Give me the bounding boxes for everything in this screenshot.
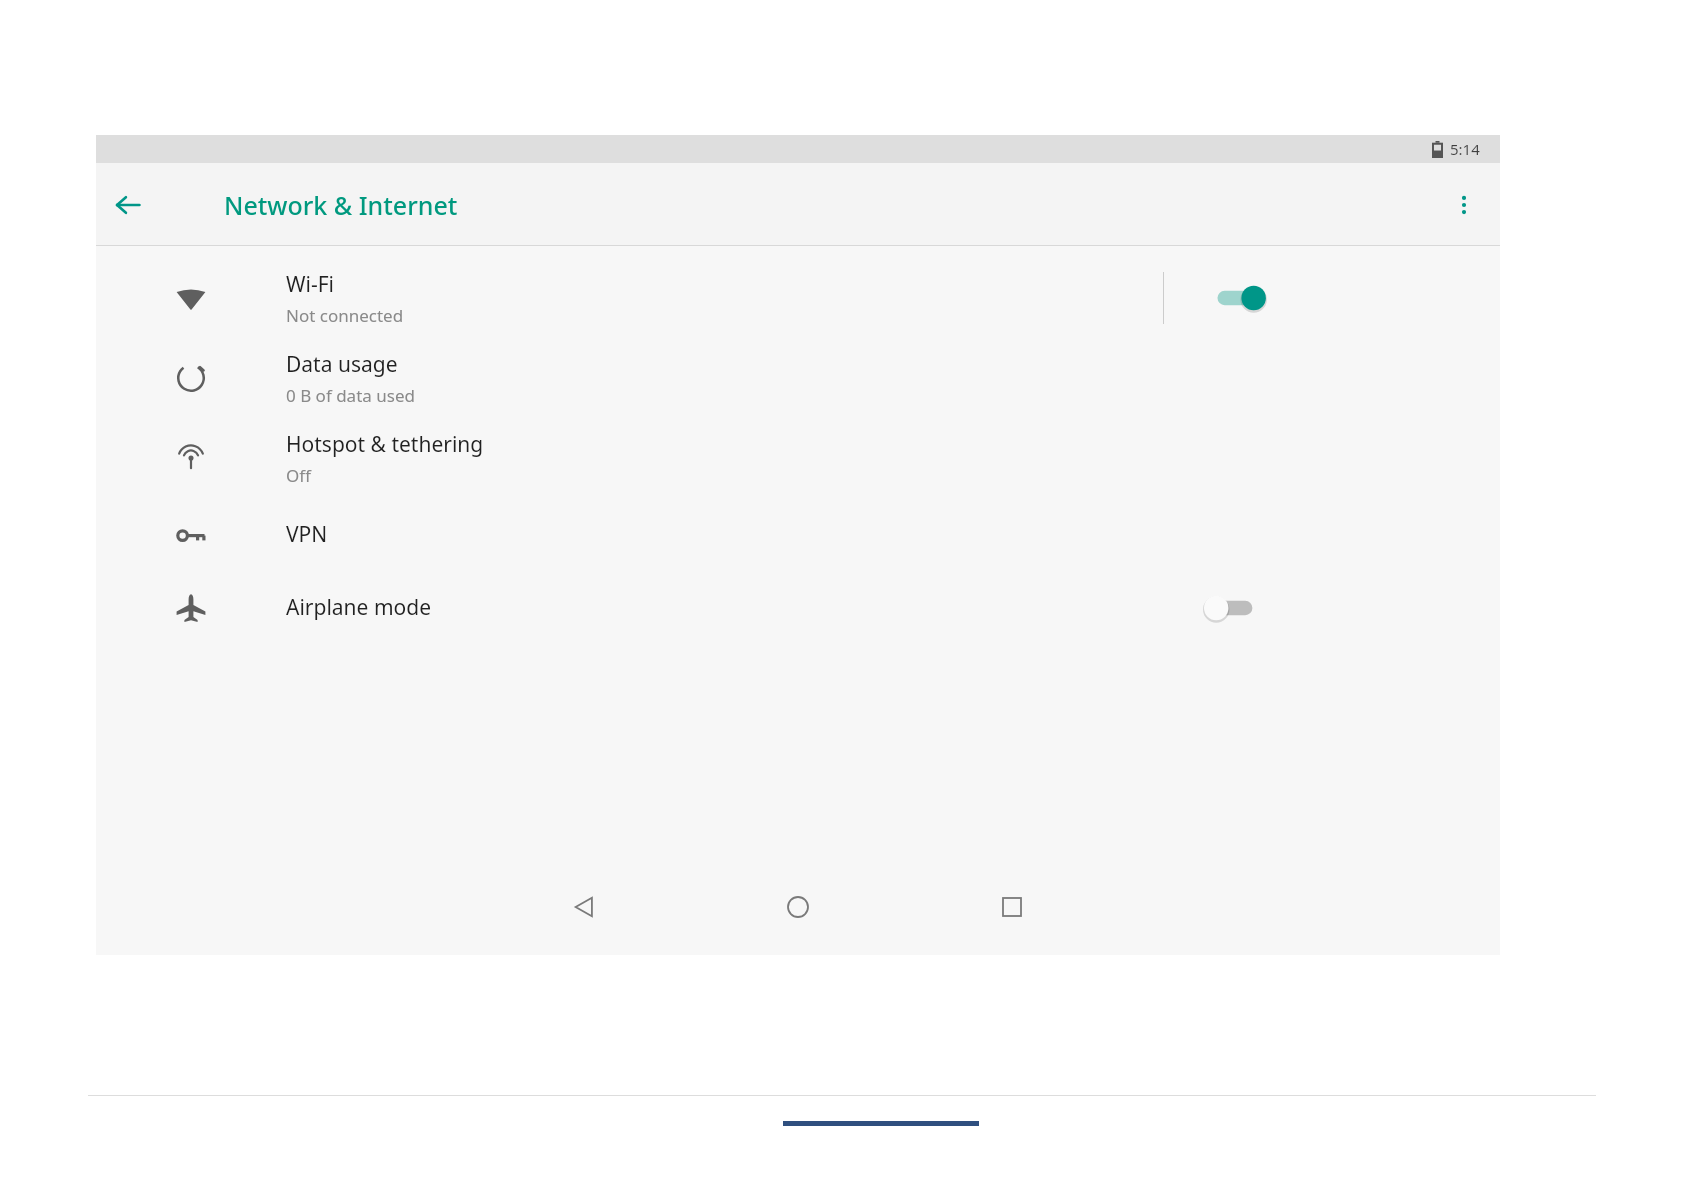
button[interactable]: Back [536,879,632,935]
staticText: Data usage [286,350,398,379]
staticText: VPN [286,520,328,549]
button[interactable]: Airplane mode toggle [1180,580,1290,636]
staticText: Wi-Fi [286,270,335,299]
button[interactable]: Wi-Fi toggle [1188,270,1298,326]
staticText: Off [286,464,311,487]
staticText: Hotspot & tethering [286,430,484,459]
button[interactable]: Airplane mode [96,571,1500,644]
button[interactable]: Data usage [96,338,1500,418]
button[interactable]: Recent apps [964,879,1060,935]
button[interactable]: Hotspot & tethering [96,418,1500,498]
staticText: Not connected [286,304,404,327]
button[interactable]: Back [100,177,156,233]
staticText: 0 B of data used [286,384,415,407]
staticText: 5:14 [1450,139,1480,159]
staticText: Network & Internet [224,188,458,222]
button[interactable]: More options [1436,177,1492,233]
button[interactable]: Wi-Fi [96,258,1500,338]
button[interactable]: Home [750,879,846,935]
staticText: Airplane mode [286,593,432,622]
button[interactable]: VPN [96,498,1500,571]
